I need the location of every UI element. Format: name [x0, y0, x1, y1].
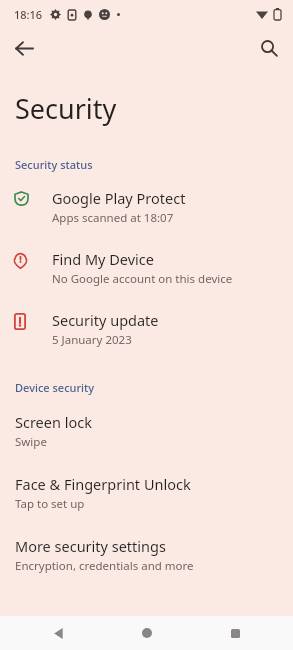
- button[interactable]: Recent apps: [205, 616, 265, 650]
- button[interactable]: More security settings: [0, 533, 293, 577]
- button[interactable]: Back: [28, 616, 88, 650]
- staticText: No Google account on this device: [52, 271, 233, 287]
- staticText: Tap to set up: [15, 496, 85, 512]
- staticText: Device security: [15, 380, 95, 395]
- staticText: Google Play Protect: [52, 188, 186, 208]
- button[interactable]: Face & Fingerprint Unlock: [0, 471, 293, 515]
- staticText: Security update: [52, 310, 159, 330]
- staticText: More security settings: [15, 536, 166, 556]
- staticText: Screen lock: [15, 412, 92, 432]
- button[interactable]: Search: [250, 29, 288, 67]
- staticText: 5 January 2023: [52, 332, 132, 348]
- staticText: Face & Fingerprint Unlock: [15, 474, 191, 494]
- button[interactable]: Screen lock: [0, 409, 293, 453]
- button[interactable]: Back: [5, 29, 43, 67]
- staticText: Encryption, credentials and more: [15, 558, 194, 574]
- button[interactable]: Home: [117, 616, 177, 650]
- staticText: 18:16: [14, 7, 43, 22]
- staticText: Find My Device: [52, 249, 154, 269]
- staticText: Security status: [15, 157, 93, 172]
- button[interactable]: Google Play Protect: [0, 184, 293, 230]
- staticText: Swipe: [15, 434, 47, 450]
- staticText: Security: [15, 90, 117, 127]
- button[interactable]: Security update: [0, 306, 293, 352]
- staticText: Apps scanned at 18:07: [52, 210, 174, 226]
- button[interactable]: Find My Device: [0, 245, 293, 291]
